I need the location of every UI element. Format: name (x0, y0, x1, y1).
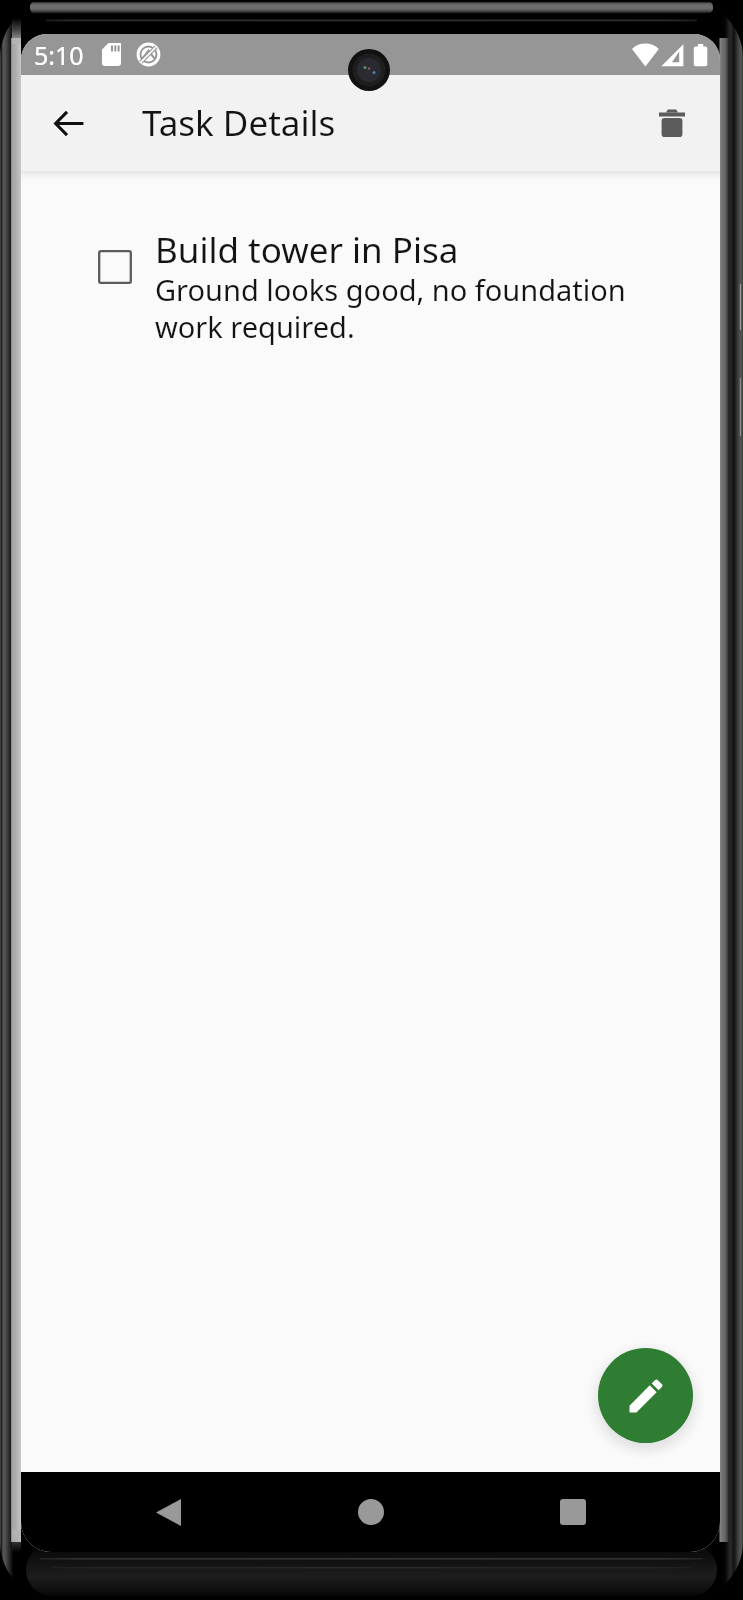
staticText: Build tower in Pisa (155, 226, 459, 274)
button[interactable]: Navigate up (34, 88, 104, 158)
button[interactable]: Edit task (598, 1348, 693, 1443)
button[interactable]: Recent apps (537, 1476, 609, 1548)
staticText: Ground looks good, no foundation work re… (155, 270, 635, 347)
button[interactable]: Back (132, 1476, 204, 1548)
button[interactable]: Home (335, 1476, 407, 1548)
staticText: Task Details (142, 99, 336, 147)
staticText: 5:10 (34, 38, 84, 72)
button[interactable]: Delete task (637, 88, 707, 158)
button[interactable]: Mark task complete (98, 250, 132, 284)
